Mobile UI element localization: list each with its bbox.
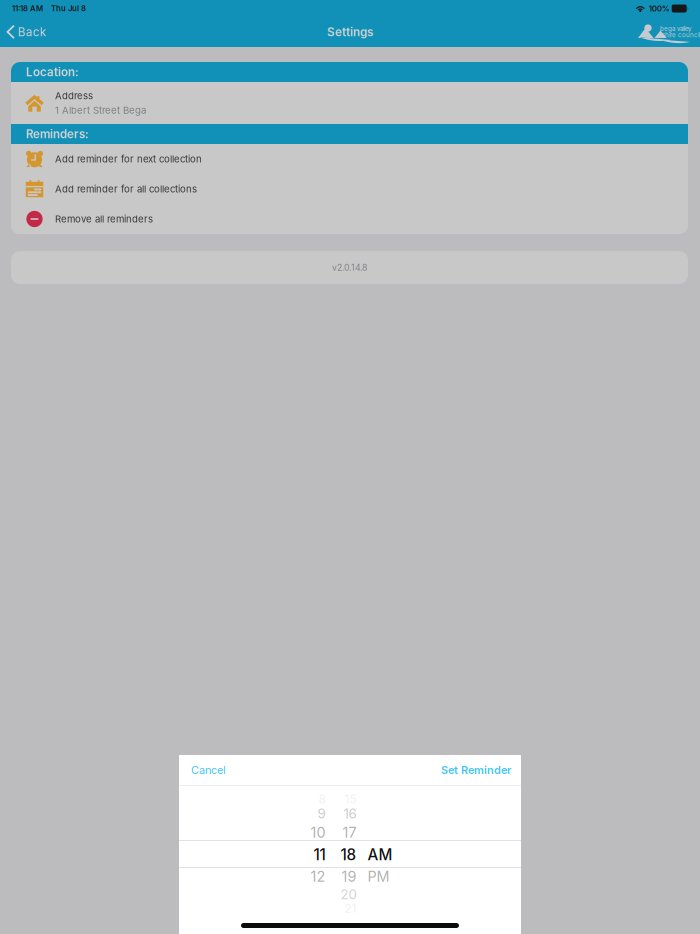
staticText: 21	[344, 901, 356, 916]
staticText: Remove all reminders	[55, 213, 153, 225]
staticText: 10	[310, 824, 325, 841]
staticText: AM	[367, 846, 392, 864]
staticText: 11	[313, 846, 325, 864]
button[interactable]: Remove all reminders	[11, 204, 688, 234]
staticText: shire council	[662, 31, 700, 39]
staticText: Add reminder for next collection	[55, 153, 202, 165]
staticText: 1 Albert Street Bega	[55, 104, 146, 116]
button[interactable]: Address	[11, 82, 688, 124]
button[interactable]: Cancel	[180, 755, 237, 785]
staticText: Reminders:	[26, 127, 89, 141]
staticText: 12	[310, 868, 325, 885]
staticText: PM	[367, 868, 389, 885]
staticText: 20	[340, 886, 356, 902]
staticText: 100%	[649, 4, 670, 13]
staticText: 9	[317, 805, 325, 822]
staticText: Address	[55, 90, 93, 101]
staticText: 8	[318, 792, 325, 806]
staticText: 11:18 AM	[12, 4, 43, 13]
button[interactable]: Back	[0, 17, 56, 47]
staticText: 17	[342, 824, 356, 841]
staticText: Cancel	[191, 763, 226, 777]
staticText: Location:	[26, 65, 79, 79]
button[interactable]: Set Reminder	[431, 755, 521, 785]
staticText: Back	[18, 25, 46, 39]
staticText: 19	[341, 868, 356, 885]
staticText: Set Reminder	[441, 763, 511, 777]
staticText: 18	[340, 846, 356, 864]
staticText: Add reminder for all collections	[55, 183, 197, 195]
staticText: v2.0.14.8	[332, 262, 367, 273]
staticText: Thu Jul 8	[51, 4, 86, 13]
staticText: bega valley	[660, 25, 691, 32]
staticText: Settings	[327, 25, 373, 39]
staticText: 15	[344, 792, 356, 806]
staticText: 16	[343, 805, 356, 822]
button[interactable]: Add reminder for next collection	[11, 144, 688, 174]
button[interactable]: Add reminder for all collections	[11, 174, 688, 204]
